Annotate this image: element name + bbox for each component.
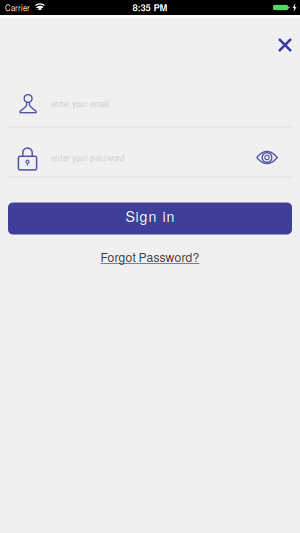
button[interactable]: enter your email	[0, 93, 300, 113]
button[interactable]	[256, 150, 278, 165]
staticText: enter your password	[51, 151, 125, 164]
staticText: 8:35 PM	[132, 1, 167, 14]
staticText: Carrier	[5, 1, 30, 14]
staticText: Forgot Password?	[100, 248, 199, 265]
button[interactable]: Forgot Password?	[100, 248, 199, 265]
staticText: Sign in	[125, 206, 174, 226]
button[interactable]: Sign in	[8, 202, 292, 234]
button[interactable]	[278, 38, 292, 52]
button[interactable]: enter your password	[0, 145, 300, 170]
staticText: enter your email	[51, 97, 109, 110]
